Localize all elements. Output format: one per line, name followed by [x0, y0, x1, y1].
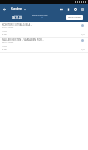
staticText: Kundene: [11, 7, 23, 11]
button[interactable]: VELG KUNDE: [66, 15, 83, 20]
staticText: FALLER NESTEN - VARIABEN FOR ..: [2, 38, 44, 42]
button[interactable]: [0, 22, 88, 38]
button[interactable]: Help: [72, 6, 79, 13]
staticText: Antall: [2, 45, 8, 48]
staticText: 08.11.23: [12, 16, 22, 19]
staticText: Bestilt ordre i bes: [32, 14, 48, 17]
staticText: avdeling: [14, 14, 22, 17]
staticText: 3 stk: [2, 48, 7, 51]
button[interactable]: [0, 37, 88, 53]
button[interactable]: Documents: [65, 6, 72, 13]
staticText: 04.11.2023: [2, 26, 14, 29]
staticText: 0,00: [81, 33, 85, 36]
staticText: 3 stk: [2, 33, 7, 36]
button[interactable]: Back: [0, 5, 9, 14]
staticText: Antall: [2, 30, 8, 33]
button[interactable]: Video call: [58, 6, 65, 13]
staticText: KONTOR I UTVALG BLA ..: [2, 23, 33, 27]
button[interactable]: Apps: [79, 6, 86, 13]
staticText: VELG KUNDE: [68, 16, 81, 19]
staticText: 0,00: [81, 48, 85, 51]
staticText: 06.11.2023: [2, 41, 14, 44]
